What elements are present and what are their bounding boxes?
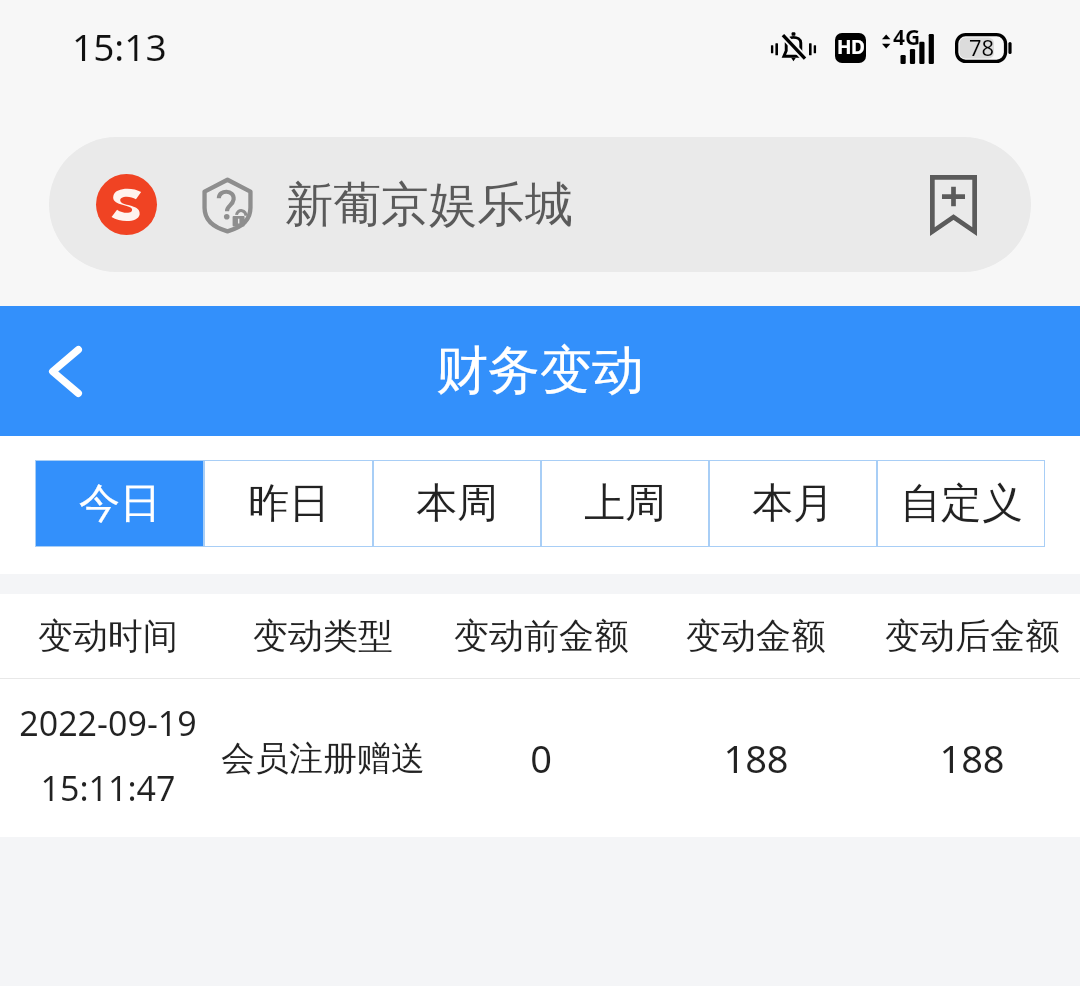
staticText: 变动后金额 (885, 614, 1060, 658)
button[interactable]: 本月 (709, 460, 877, 547)
staticText: 本月 (752, 478, 834, 530)
staticText: 今日 (79, 478, 161, 530)
staticText: 昨日 (248, 478, 330, 530)
staticText: HD (837, 34, 865, 60)
button[interactable]: Back (20, 306, 110, 436)
staticText: 变动时间 (38, 614, 178, 658)
staticText: 0 (530, 732, 552, 784)
staticText: 会员注册赠送 (221, 737, 425, 780)
staticText: 本周 (416, 478, 498, 530)
button[interactable]: 新葡京娱乐城 (49, 137, 1031, 272)
staticText: 188 (723, 732, 789, 784)
button[interactable]: 本周 (373, 460, 541, 547)
staticText: 188 (939, 732, 1005, 784)
button[interactable]: 上周 (541, 460, 709, 547)
button[interactable]: 2022-09-19 15:11:47 (0, 679, 1080, 837)
button[interactable]: Add bookmark (903, 137, 1003, 272)
button[interactable]: 昨日 (204, 460, 373, 547)
staticText: 4G (893, 23, 921, 52)
staticText: 财务变动 (436, 338, 644, 404)
staticText: 15:13 (72, 21, 167, 71)
button[interactable]: 今日 (35, 460, 204, 547)
staticText: 78 (969, 32, 995, 62)
staticText: 变动金额 (686, 614, 826, 658)
staticText: 自定义 (900, 478, 1023, 530)
button[interactable]: 自定义 (877, 460, 1045, 547)
staticText: 变动类型 (253, 614, 393, 658)
staticText: 2022-09-19 15:11:47 (0, 700, 223, 811)
staticText: 变动前金额 (454, 614, 629, 658)
staticText: 上周 (584, 478, 666, 530)
staticText: 新葡京娱乐城 (285, 175, 573, 235)
